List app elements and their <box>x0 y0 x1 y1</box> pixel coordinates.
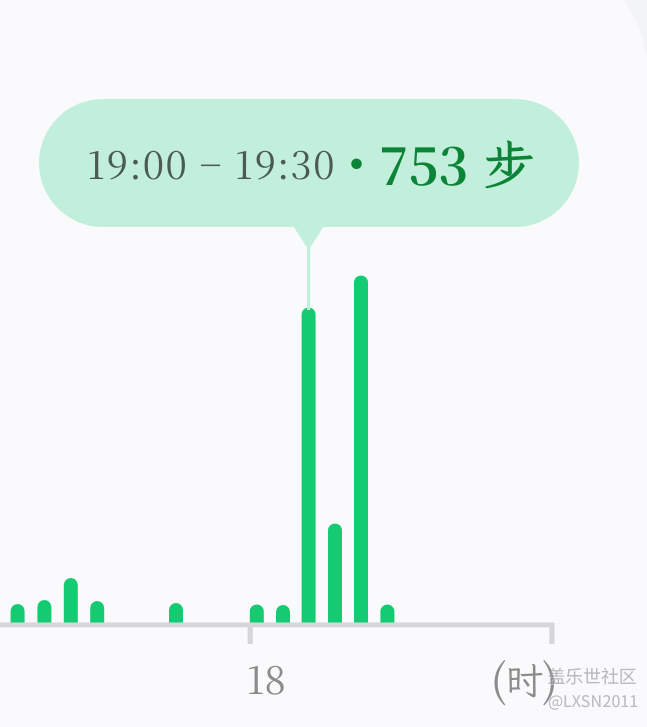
button[interactable]: 19:00 - 19:30 · 753 steps <box>39 99 579 227</box>
